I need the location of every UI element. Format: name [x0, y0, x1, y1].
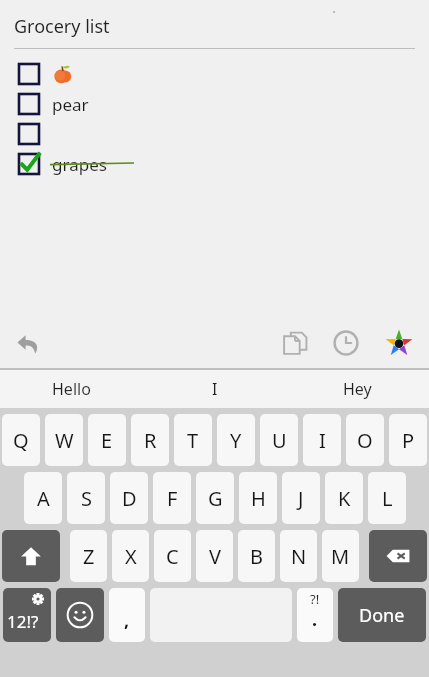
staticText: Hey	[343, 378, 372, 400]
staticText: K	[338, 485, 351, 512]
staticText: ,	[124, 608, 130, 633]
button[interactable]: I	[303, 414, 341, 466]
staticText: .	[312, 607, 318, 632]
button[interactable]: F	[153, 472, 191, 524]
staticText: Done	[359, 603, 405, 628]
button[interactable]: J	[282, 472, 320, 524]
button[interactable]: R	[131, 414, 169, 466]
button[interactable]: Copy	[272, 320, 318, 366]
staticText: A	[37, 485, 50, 512]
button[interactable]: Hello	[0, 370, 143, 408]
button[interactable]: Emoji	[56, 588, 104, 642]
button[interactable]: M	[322, 530, 359, 582]
button[interactable]: C	[154, 530, 191, 582]
staticText: Grocery list	[14, 14, 110, 39]
button[interactable]: G	[196, 472, 234, 524]
staticText: Y	[230, 427, 242, 454]
button[interactable]: W	[45, 414, 83, 466]
staticText: O	[357, 427, 373, 454]
button[interactable]: L	[368, 472, 406, 524]
button[interactable]: grapes	[0, 149, 429, 179]
staticText: ?!	[310, 590, 320, 608]
staticText: grapes	[52, 153, 107, 176]
button[interactable]: V	[196, 530, 233, 582]
staticText: M	[331, 543, 350, 570]
button[interactable]: D	[110, 472, 148, 524]
staticText: Z	[83, 543, 95, 570]
staticText: Q	[13, 427, 29, 454]
button[interactable]: Shift	[2, 530, 60, 582]
staticText: T	[187, 427, 199, 454]
button[interactable]: ?!	[297, 588, 333, 642]
button[interactable]: B	[238, 530, 275, 582]
staticText: B	[250, 543, 263, 570]
button[interactable]: pear	[0, 89, 429, 119]
staticText: S	[81, 485, 92, 512]
button[interactable]: I	[143, 370, 286, 408]
button[interactable]: Undo	[6, 322, 50, 366]
staticText: E	[101, 427, 113, 454]
staticText: D	[122, 485, 137, 512]
button[interactable]: A	[24, 472, 62, 524]
button[interactable]: S	[67, 472, 105, 524]
button[interactable]: U	[260, 414, 298, 466]
staticText: pear	[52, 93, 89, 116]
staticText: 12!?	[7, 610, 39, 633]
staticText: J	[298, 485, 304, 512]
button[interactable]: Assistant	[376, 320, 422, 366]
staticText: L	[382, 485, 393, 512]
staticText: Hello	[52, 378, 91, 400]
button[interactable]: History	[323, 320, 369, 366]
staticText: W	[55, 427, 74, 454]
button[interactable]: H	[239, 472, 277, 524]
button[interactable]: Backspace	[369, 530, 427, 582]
button[interactable]: X	[112, 530, 149, 582]
staticText: C	[166, 543, 179, 570]
button[interactable]: Done	[338, 588, 426, 642]
button[interactable]: ,	[109, 588, 145, 642]
staticText: I	[319, 427, 326, 454]
staticText: P	[402, 427, 415, 454]
button[interactable]: Z	[70, 530, 107, 582]
button[interactable]	[0, 59, 429, 89]
button[interactable]: Q	[2, 414, 40, 466]
staticText: U	[272, 427, 287, 454]
button[interactable]: N	[280, 530, 317, 582]
button[interactable]: T	[174, 414, 212, 466]
staticText: I	[212, 378, 218, 400]
staticText: G	[208, 485, 223, 512]
button[interactable]: 12!?	[3, 588, 51, 642]
button[interactable]: P	[389, 414, 427, 466]
button[interactable]: Hey	[286, 370, 429, 408]
staticText: N	[291, 543, 307, 570]
staticText: V	[209, 543, 221, 570]
button[interactable]: K	[325, 472, 363, 524]
button[interactable]	[0, 119, 429, 149]
button[interactable]: O	[346, 414, 384, 466]
staticText: X	[125, 543, 137, 570]
button[interactable]: E	[88, 414, 126, 466]
staticText: H	[251, 485, 266, 512]
button[interactable]: Y	[217, 414, 255, 466]
staticText: R	[144, 427, 157, 454]
staticText: F	[167, 485, 178, 512]
